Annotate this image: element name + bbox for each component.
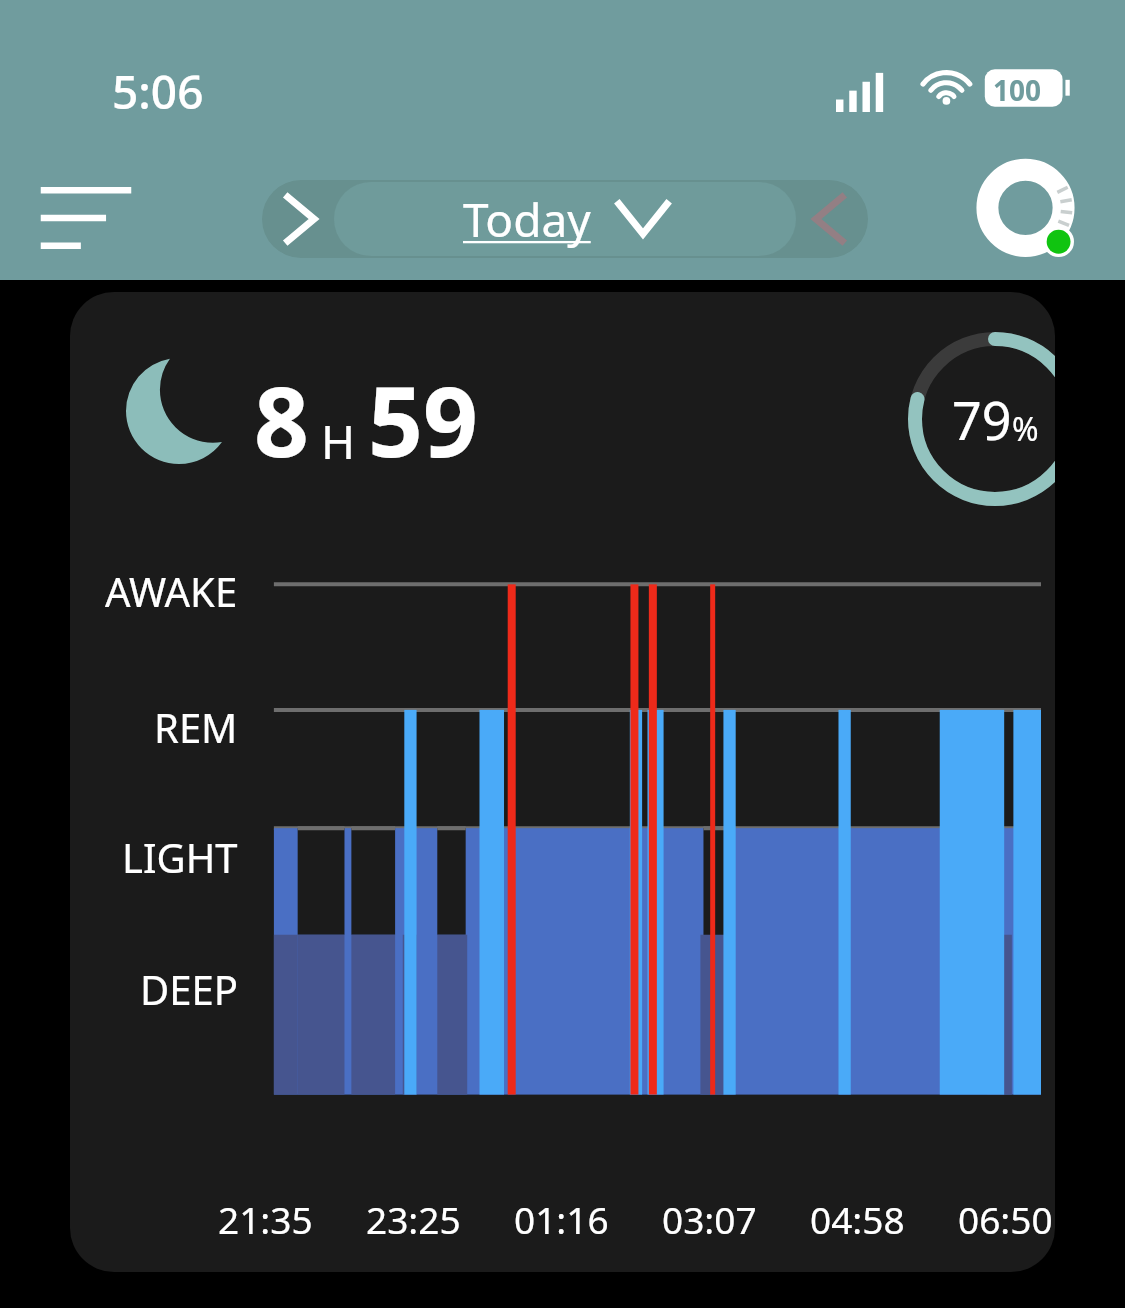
button[interactable]: Menu [26,166,146,270]
button[interactable]: Today [334,182,796,256]
staticText: 100 [993,71,1042,109]
staticText: 06:50 [958,1194,1053,1244]
staticText: 8 [254,354,309,485]
staticText: 04:58 [810,1194,905,1244]
staticText: 5:06 [112,60,204,123]
button[interactable]: Previous day [262,180,340,258]
staticText: H [321,410,356,473]
staticText: 79 [952,384,1012,455]
staticText: Today [463,188,591,251]
staticText: LIGHT [122,830,238,884]
staticText: 01:16 [514,1194,609,1244]
button[interactable]: Device status [976,160,1086,264]
staticText: AWAKE [105,564,238,618]
button[interactable]: Next day [790,180,868,258]
staticText: 21:35 [218,1194,313,1244]
staticText: % [1012,407,1039,451]
staticText: 03:07 [662,1194,757,1244]
staticText: 23:25 [366,1194,461,1244]
staticText: DEEP [140,962,238,1016]
button[interactable]: 8 [70,292,1055,1272]
staticText: REM [154,700,238,754]
staticText: 59 [368,354,478,485]
